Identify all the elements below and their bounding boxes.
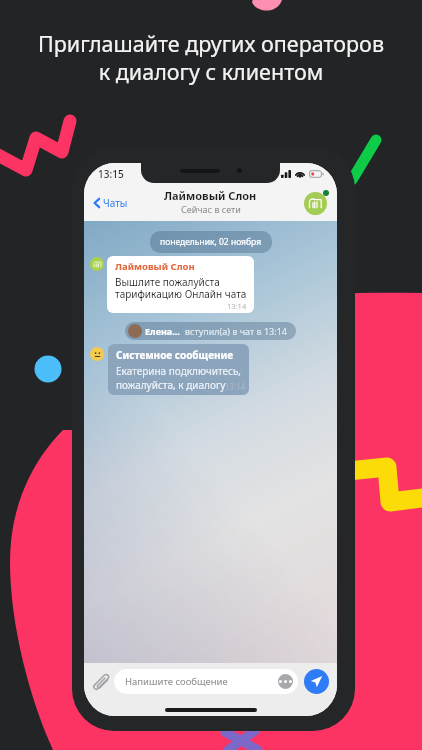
staticText: Чаты: [103, 196, 128, 210]
staticText: Вышлите пожалуйста тарификацию Онлайн ча…: [115, 275, 247, 301]
staticText: Приглашайте других операторов к диалогу …: [0, 29, 422, 87]
staticText: 13:15: [98, 167, 124, 181]
button[interactable]: Attach file: [92, 672, 112, 692]
staticText: 13:14: [227, 301, 247, 311]
staticText: Сейчас в сети: [181, 203, 241, 215]
staticText: вступил(а) в чат в 13:14: [185, 325, 287, 337]
button[interactable]: More options: [278, 674, 293, 689]
staticText: Лаймовый Слон: [164, 188, 257, 203]
button[interactable]: Чаты: [90, 192, 132, 214]
staticText: Елена...: [145, 325, 180, 337]
staticText: Екатерина подключитесь, пожалуйста, к ди…: [116, 364, 242, 392]
button[interactable]: Напишите сообщение: [114, 669, 298, 694]
staticText: Напишите сообщение: [125, 675, 228, 688]
staticText: Системное сообщение: [116, 348, 234, 362]
staticText: Лаймовый Слон: [115, 260, 195, 273]
staticText: 13:14: [225, 381, 246, 392]
button[interactable]: Send: [304, 669, 329, 694]
button[interactable]: Profile: [304, 190, 329, 215]
staticText: понедельник, 02 ноября: [160, 236, 262, 248]
